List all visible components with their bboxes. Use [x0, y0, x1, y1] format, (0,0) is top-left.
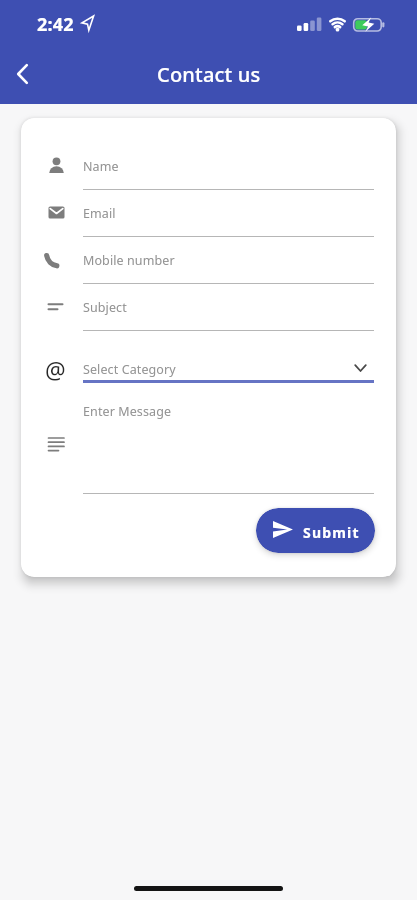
button[interactable]: [83, 396, 374, 494]
staticText: Mobile number: [83, 252, 175, 269]
button[interactable]: [83, 151, 374, 190]
staticText: Contact us: [157, 61, 261, 88]
button[interactable]: [5, 58, 39, 90]
staticText: @: [45, 354, 66, 385]
staticText: Name: [83, 158, 119, 175]
staticText: Subject: [83, 299, 127, 316]
button[interactable]: [83, 292, 374, 331]
button[interactable]: [83, 198, 374, 237]
button[interactable]: Submit: [256, 508, 375, 553]
button[interactable]: [81, 353, 374, 383]
staticText: Submit: [303, 523, 360, 542]
staticText: 2:42: [37, 12, 74, 37]
staticText: Enter Message: [83, 403, 172, 420]
button[interactable]: [83, 245, 374, 284]
staticText: Email: [83, 205, 116, 222]
staticText: Select Category: [83, 361, 176, 378]
